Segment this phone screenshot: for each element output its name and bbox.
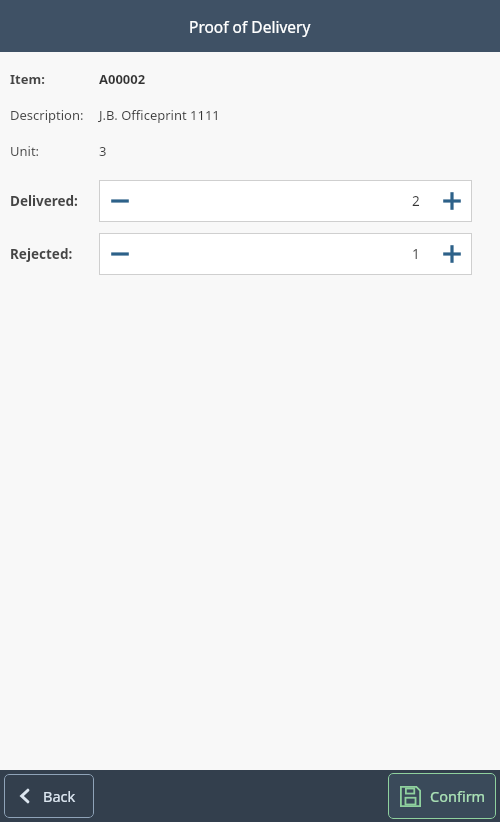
staticText: Rejected: (10, 245, 73, 263)
button[interactable]: Increase Delivered: (432, 180, 472, 222)
button[interactable]: Back (4, 774, 94, 818)
staticText: 3 (99, 142, 107, 160)
staticText: J.B. Officeprint 1111 (99, 106, 220, 124)
staticText: 1 (412, 245, 420, 263)
staticText: Confirm (430, 786, 486, 806)
staticText: Delivered: (10, 192, 78, 210)
staticText: Description: (10, 106, 84, 124)
staticText: 2 (412, 192, 420, 210)
button[interactable]: Increase Rejected: (432, 233, 472, 275)
staticText: A00002 (99, 70, 146, 88)
staticText: Unit: (10, 142, 40, 160)
staticText: Item: (10, 70, 45, 88)
staticText: Back (43, 786, 76, 806)
button[interactable]: Decrease Delivered: (99, 180, 141, 222)
button[interactable]: Decrease Rejected: (99, 233, 141, 275)
staticText: Proof of Delivery (189, 16, 311, 37)
button[interactable]: Confirm (388, 773, 496, 819)
